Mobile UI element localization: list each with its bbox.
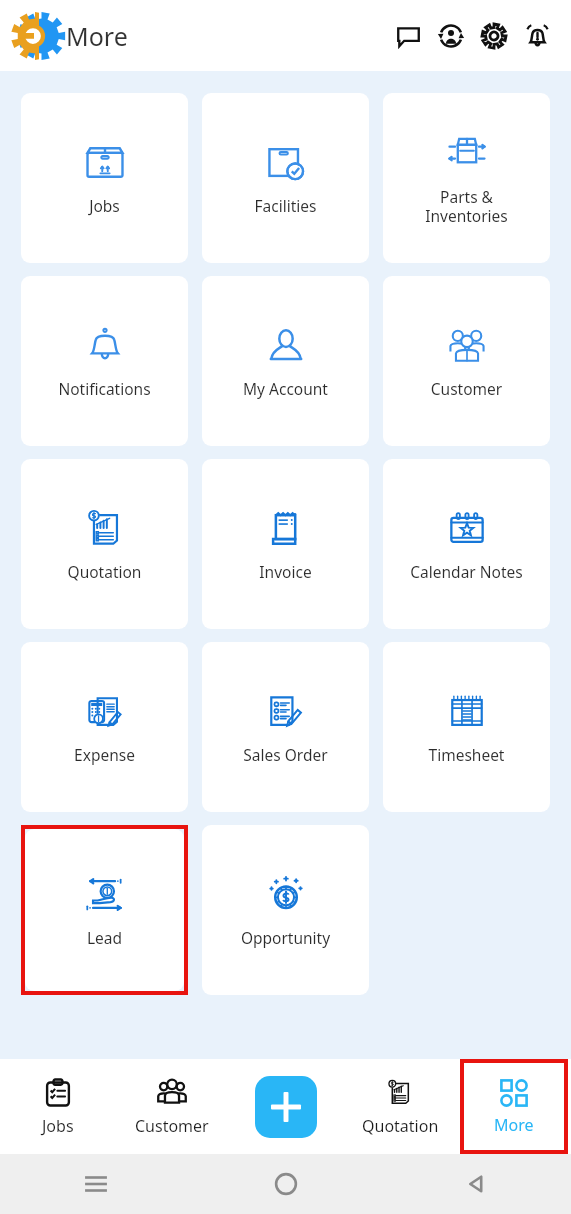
staticText: My Account (205, 378, 366, 399)
button[interactable]: Customer (115, 1059, 229, 1154)
button[interactable]: Invoice (202, 459, 369, 629)
staticText: Facilities (205, 195, 366, 216)
button[interactable]: Calendar Notes (383, 459, 550, 629)
staticText: Jobs (24, 195, 185, 216)
staticText: Quotation (362, 1115, 439, 1137)
staticText: Opportunity (205, 927, 366, 948)
staticText: More (494, 1114, 534, 1136)
button[interactable]: Expense (21, 642, 188, 812)
staticText: Sales Order (205, 744, 366, 765)
button[interactable]: Quotation (343, 1059, 457, 1154)
button[interactable]: Opportunity (202, 825, 369, 995)
button[interactable]: Add (255, 1076, 317, 1138)
button[interactable]: Parts & Inventories (383, 93, 550, 263)
button[interactable]: More (460, 1059, 568, 1154)
staticText: Calendar Notes (386, 561, 547, 582)
staticText: Notifications (24, 378, 185, 399)
staticText: Customer (135, 1115, 209, 1137)
staticText: More (66, 19, 128, 53)
staticText: Invoice (205, 561, 366, 582)
button[interactable]: Messages (388, 16, 428, 56)
button[interactable]: Notifications (21, 276, 188, 446)
button[interactable]: Sync contacts (431, 16, 471, 56)
button[interactable]: Sales Order (202, 642, 369, 812)
button[interactable]: Customer (383, 276, 550, 446)
button[interactable]: Facilities (202, 93, 369, 263)
staticText: Jobs (42, 1115, 74, 1137)
button[interactable]: Timesheet (383, 642, 550, 812)
staticText: Parts & Inventories (386, 186, 547, 226)
staticText: Lead (28, 927, 181, 948)
staticText: Quotation (24, 561, 185, 582)
button[interactable]: Jobs (21, 93, 188, 263)
button[interactable]: Quotation (21, 459, 188, 629)
staticText: Expense (24, 744, 185, 765)
staticText: Timesheet (386, 744, 547, 765)
button[interactable]: My Account (202, 276, 369, 446)
button[interactable]: Lead (25, 829, 184, 991)
staticText: Customer (386, 378, 547, 399)
button[interactable]: Jobs (0, 1059, 115, 1154)
button[interactable]: Settings (474, 16, 514, 56)
button[interactable]: Alerts (517, 16, 557, 56)
